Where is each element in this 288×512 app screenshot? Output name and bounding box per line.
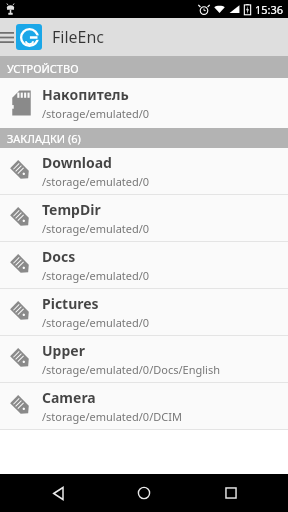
staticText: Pictures: [42, 294, 99, 313]
button[interactable]: Накопитель: [0, 78, 288, 128]
button[interactable]: Pictures: [0, 289, 288, 335]
staticText: Накопитель: [42, 85, 129, 104]
button[interactable]: Home: [115, 474, 173, 512]
staticText: Docs: [42, 247, 76, 266]
staticText: ЗАКЛАДКИ (6): [7, 131, 81, 146]
staticText: УСТРОЙСТВО: [7, 61, 79, 76]
staticText: 15:36: [255, 2, 284, 17]
staticText: /storage/emulated/0: [42, 268, 150, 283]
staticText: /storage/emulated/0: [42, 221, 150, 236]
button[interactable]: Upper: [0, 336, 288, 382]
staticText: /storage/emulated/0: [42, 106, 150, 121]
button[interactable]: Recent apps: [202, 474, 260, 512]
staticText: Upper: [42, 341, 85, 360]
staticText: Download: [42, 153, 112, 172]
button[interactable]: TempDir: [0, 195, 288, 241]
staticText: /storage/emulated/0: [42, 174, 150, 189]
button[interactable]: Open navigation drawer: [0, 18, 14, 56]
button[interactable]: Download: [0, 148, 288, 194]
staticText: /storage/emulated/0: [42, 315, 150, 330]
button[interactable]: Camera: [0, 383, 288, 429]
button[interactable]: Back: [29, 474, 87, 512]
staticText: FileEnc: [52, 26, 105, 48]
button[interactable]: Docs: [0, 242, 288, 288]
staticText: TempDir: [42, 200, 101, 219]
staticText: /storage/emulated/0/DCIM: [42, 409, 182, 424]
staticText: Camera: [42, 388, 96, 407]
staticText: /storage/emulated/0/Docs/English: [42, 362, 221, 377]
